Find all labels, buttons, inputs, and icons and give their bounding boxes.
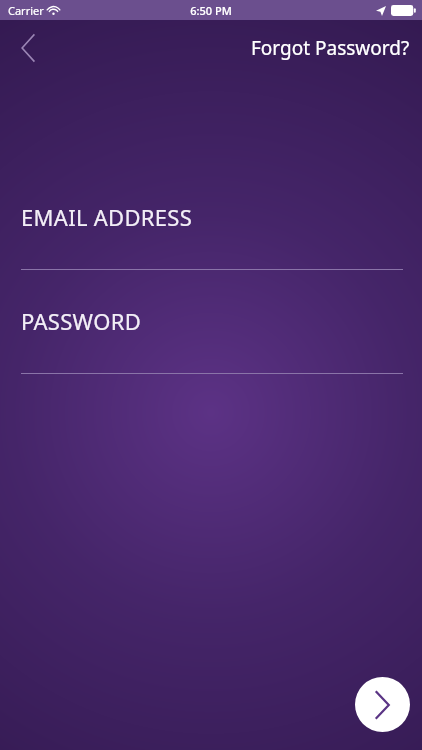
button[interactable]: Continue xyxy=(355,677,410,732)
staticText: PASSWORD xyxy=(21,306,141,336)
staticText: Forgot Password? xyxy=(251,35,410,61)
button[interactable]: PASSWORD xyxy=(0,306,422,374)
button[interactable]: EMAIL ADDRESS xyxy=(0,202,422,270)
button[interactable]: Back xyxy=(6,26,50,70)
staticText: Carrier xyxy=(8,3,44,18)
staticText: 6:50 PM xyxy=(190,3,232,18)
staticText: EMAIL ADDRESS xyxy=(21,202,193,232)
button[interactable]: Forgot Password? xyxy=(239,27,422,69)
